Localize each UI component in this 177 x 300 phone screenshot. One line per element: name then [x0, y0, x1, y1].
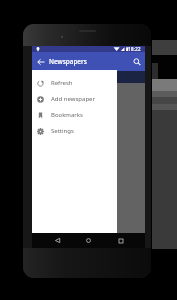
button[interactable]: Back [33, 54, 49, 70]
button[interactable]: Bookmarks [32, 107, 117, 123]
button[interactable]: Search [128, 53, 145, 70]
staticText: Settings [51, 127, 74, 135]
button[interactable]: Home [82, 234, 95, 247]
button[interactable]: Recents [114, 234, 127, 247]
staticText: Add newspaper [51, 95, 95, 103]
staticText: Newspapers [49, 57, 87, 66]
staticText: 18:22 [128, 46, 141, 52]
button[interactable]: Settings [32, 123, 117, 139]
button[interactable]: Refresh [32, 75, 117, 91]
button[interactable]: Add newspaper [32, 91, 117, 107]
button[interactable]: Back [51, 234, 64, 247]
staticText: Bookmarks [51, 111, 83, 119]
staticText: Refresh [51, 79, 73, 87]
